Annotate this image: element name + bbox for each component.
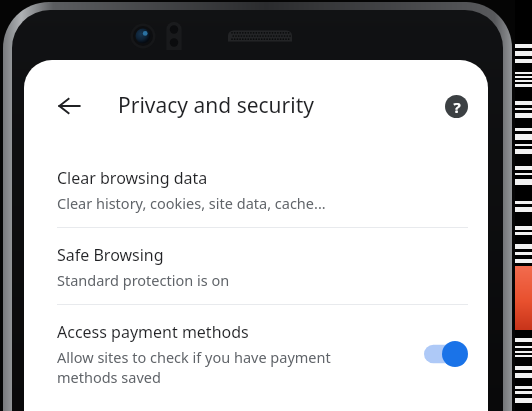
button[interactable]: Access payment methods — [24, 305, 488, 402]
button[interactable]: Clear browsing data — [24, 151, 488, 227]
staticText: Standard protection is on — [57, 270, 230, 290]
staticText: Privacy and security — [118, 91, 314, 120]
staticText: Access payment methods — [57, 321, 249, 343]
staticText: Safe Browsing — [57, 244, 164, 266]
button[interactable]: Help — [434, 84, 478, 128]
button[interactable]: Back — [46, 82, 94, 130]
staticText: Clear history, cookies, site data, cache… — [57, 193, 326, 213]
staticText: Allow sites to check if you have payment… — [57, 347, 331, 388]
staticText: ? — [453, 97, 461, 117]
button[interactable]: Access payment methods toggle, on — [424, 341, 468, 367]
button[interactable]: Safe Browsing — [24, 228, 488, 304]
staticText: Clear browsing data — [57, 167, 208, 189]
